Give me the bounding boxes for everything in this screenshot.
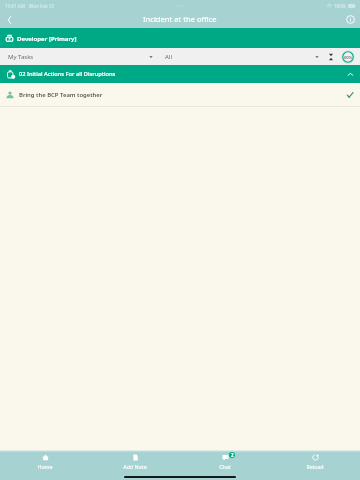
button[interactable]: Add Note xyxy=(90,452,180,472)
staticText: 02 Initial Actions For all Disruptions xyxy=(19,70,116,78)
staticText: 2 xyxy=(231,452,234,458)
staticText: Add Note xyxy=(123,463,147,470)
button[interactable]: Developer [Primary] xyxy=(0,28,360,48)
button[interactable]: My Tasks xyxy=(0,48,159,65)
staticText: Bring the BCP Team together xyxy=(19,91,103,99)
button[interactable]: Bring the BCP Team together xyxy=(0,83,360,106)
button[interactable]: Home xyxy=(0,452,90,472)
button[interactable]: Reload xyxy=(270,452,360,472)
staticText: All xyxy=(165,53,172,61)
staticText: My Tasks xyxy=(8,53,34,61)
staticText: Reload xyxy=(306,463,324,470)
staticText: Incident at the office xyxy=(143,14,217,24)
staticText: 100% xyxy=(334,3,346,9)
staticText: Developer [Primary] xyxy=(17,34,77,42)
staticText: Mon Feb 13 xyxy=(29,3,54,9)
button[interactable]: Overall progress xyxy=(341,50,355,64)
button[interactable]: All xyxy=(159,48,324,65)
staticText: Chat xyxy=(219,463,231,470)
button[interactable]: 02 Initial Actions For all Disruptions xyxy=(0,65,360,83)
staticText: Home xyxy=(37,463,53,470)
staticText: 11:41 AM xyxy=(5,3,25,9)
staticText: 00% xyxy=(344,55,353,60)
button[interactable]: Collapse all xyxy=(324,50,337,63)
button[interactable]: 2 xyxy=(180,452,270,472)
button[interactable]: Back xyxy=(2,13,15,26)
button[interactable]: Info xyxy=(344,13,357,26)
